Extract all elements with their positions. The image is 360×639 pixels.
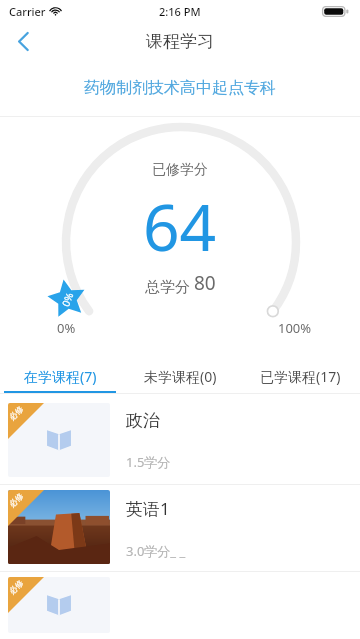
staticText: 1.5学分 — [126, 453, 171, 471]
staticText: 必修 — [8, 404, 25, 422]
staticText: 在学课程(7) — [24, 367, 97, 386]
button[interactable]: 在学课程(7) — [0, 360, 120, 393]
button[interactable]: 必修 — [0, 398, 360, 484]
staticText: 未学课程(0) — [144, 367, 217, 386]
staticText: 64 — [143, 183, 217, 270]
staticText: 已修学分 — [152, 161, 208, 179]
button[interactable]: 已学课程(17) — [240, 360, 360, 393]
staticText: 0% — [57, 319, 76, 337]
staticText: 100% — [278, 319, 312, 337]
staticText: 必修 — [8, 491, 25, 509]
staticText: 必修 — [8, 578, 25, 596]
staticText: 2:16 PM — [159, 4, 201, 19]
staticText: 0% — [58, 289, 77, 309]
button[interactable]: 药物制剂技术高中起点专科 — [0, 60, 360, 116]
staticText: 3.0学分_ _ — [126, 542, 186, 560]
staticText: 课程学习 — [146, 31, 214, 52]
staticText: 已学课程(17) — [260, 367, 341, 386]
staticText: 政治 — [126, 410, 160, 431]
button[interactable]: 未学课程(0) — [120, 360, 240, 393]
staticText: 英语1 — [126, 497, 170, 520]
staticText: 药物制剂技术高中起点专科 — [84, 78, 276, 98]
staticText: 80 — [194, 270, 216, 296]
staticText: Carrier — [9, 4, 46, 19]
button[interactable]: 必修 — [0, 485, 360, 571]
staticText: 总学分 — [145, 276, 194, 296]
button[interactable]: Back — [0, 22, 46, 60]
button[interactable]: 必修 — [0, 572, 360, 639]
